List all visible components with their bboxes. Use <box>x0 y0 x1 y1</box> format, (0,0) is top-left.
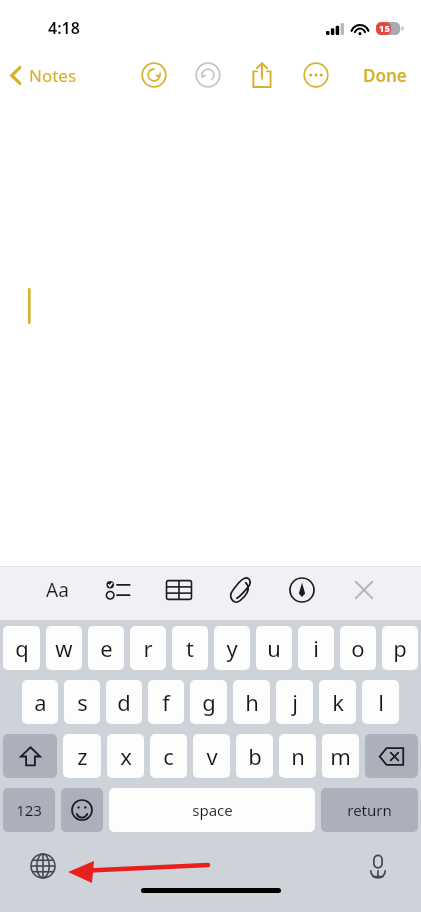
button[interactable]: Undo <box>137 58 171 92</box>
staticText: o <box>351 633 365 663</box>
button[interactable]: Hide keyboard <box>333 567 395 613</box>
staticText: 123 <box>16 800 42 820</box>
button[interactable]: j <box>276 680 313 724</box>
staticText: u <box>267 633 281 663</box>
staticText: l <box>378 687 384 717</box>
button[interactable]: x <box>107 734 144 778</box>
button[interactable]: return <box>321 788 418 832</box>
button[interactable]: Table <box>148 567 209 613</box>
button[interactable]: c <box>150 734 187 778</box>
staticText: Done <box>363 64 407 87</box>
staticText: v <box>206 741 218 771</box>
staticText: f <box>162 687 170 717</box>
button[interactable]: Markup <box>271 567 333 613</box>
staticText: h <box>245 687 259 717</box>
button[interactable]: y <box>214 626 250 670</box>
button[interactable]: Dictate <box>361 849 395 883</box>
button[interactable]: Done <box>351 58 421 93</box>
staticText: 15 <box>379 22 390 35</box>
button[interactable]: r <box>130 626 166 670</box>
button[interactable]: Notes <box>0 58 89 93</box>
staticText: c <box>163 741 174 771</box>
button[interactable]: Share <box>245 58 279 92</box>
staticText: n <box>291 741 305 771</box>
staticText: k <box>332 687 344 717</box>
staticText: space <box>192 800 233 820</box>
button[interactable]: b <box>236 734 273 778</box>
button[interactable]: l <box>362 680 399 724</box>
button[interactable]: z <box>63 734 101 778</box>
button[interactable]: k <box>319 680 356 724</box>
staticText: e <box>100 633 113 663</box>
staticText: a <box>34 687 47 717</box>
button[interactable]: Checklist <box>87 567 148 613</box>
staticText: 4:18 <box>48 17 80 39</box>
button[interactable]: o <box>340 626 376 670</box>
staticText: m <box>330 741 351 771</box>
button[interactable]: shift <box>3 734 57 778</box>
button[interactable]: Change keyboard <box>26 849 60 883</box>
button[interactable]: Redo <box>191 58 225 92</box>
button[interactable]: emoji <box>61 788 103 832</box>
button[interactable]: q <box>3 626 40 670</box>
staticText: q <box>15 633 29 663</box>
button[interactable]: t <box>172 626 208 670</box>
button[interactable]: h <box>233 680 270 724</box>
button[interactable]: m <box>322 734 359 778</box>
staticText: d <box>117 687 131 717</box>
staticText: Aa <box>46 577 69 603</box>
button[interactable]: s <box>64 680 100 724</box>
staticText: s <box>77 687 88 717</box>
button[interactable]: u <box>256 626 292 670</box>
staticText: g <box>202 687 216 717</box>
button[interactable]: Format text <box>26 567 87 613</box>
button[interactable]: e <box>88 626 124 670</box>
staticText: p <box>393 633 407 663</box>
button[interactable]: w <box>46 626 82 670</box>
staticText: z <box>77 741 88 771</box>
button[interactable] <box>0 98 421 566</box>
button[interactable]: n <box>279 734 316 778</box>
staticText: i <box>313 633 319 663</box>
staticText: j <box>292 687 298 717</box>
button[interactable]: More options <box>299 58 333 92</box>
button[interactable]: space <box>109 788 315 832</box>
button[interactable]: i <box>298 626 334 670</box>
button[interactable]: v <box>193 734 230 778</box>
button[interactable]: 123 <box>3 788 55 832</box>
button[interactable]: d <box>106 680 142 724</box>
button[interactable]: a <box>22 680 58 724</box>
button[interactable]: p <box>382 626 418 670</box>
button[interactable]: Attach <box>209 567 271 613</box>
staticText: t <box>186 633 194 663</box>
staticText: w <box>55 633 73 663</box>
staticText: x <box>120 741 132 771</box>
staticText: b <box>248 741 262 771</box>
staticText: Notes <box>29 64 77 87</box>
staticText: return <box>347 800 392 820</box>
button[interactable]: backspace <box>365 734 418 778</box>
staticText: y <box>226 633 238 663</box>
button[interactable]: g <box>190 680 227 724</box>
button[interactable]: f <box>148 680 184 724</box>
staticText: r <box>143 633 153 663</box>
